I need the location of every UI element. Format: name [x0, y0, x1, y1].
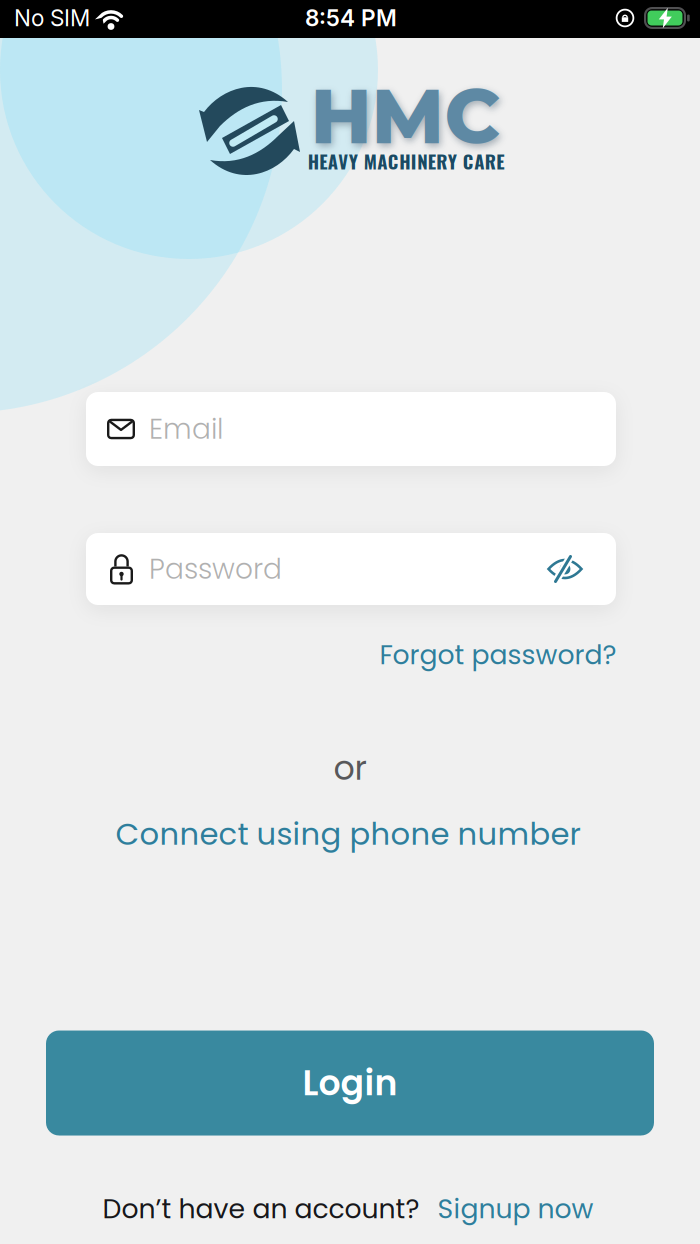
button[interactable]: Password — [86, 533, 616, 605]
staticText: Forgot password? — [379, 636, 616, 674]
staticText: Login — [302, 1059, 397, 1107]
staticText: HEAVY MACHINERY CARE — [308, 147, 504, 175]
staticText: or — [333, 745, 366, 791]
button[interactable]: Forgot password? — [379, 636, 616, 674]
staticText: No SIM — [14, 4, 90, 32]
staticText: Signup now — [437, 1190, 593, 1228]
staticText: Password — [149, 549, 282, 589]
staticText: Don’t have an account? — [102, 1190, 419, 1228]
button[interactable]: Login — [46, 1030, 654, 1135]
button[interactable]: Connect using phone number — [115, 812, 580, 855]
staticText: HMC — [310, 70, 499, 162]
button[interactable]: Email — [86, 392, 616, 466]
staticText: 8:54 PM — [305, 4, 397, 32]
staticText: Connect using phone number — [115, 812, 580, 855]
button[interactable]: Signup now — [437, 1190, 593, 1228]
button[interactable]: Show password — [547, 556, 583, 582]
staticText: Email — [149, 409, 223, 449]
